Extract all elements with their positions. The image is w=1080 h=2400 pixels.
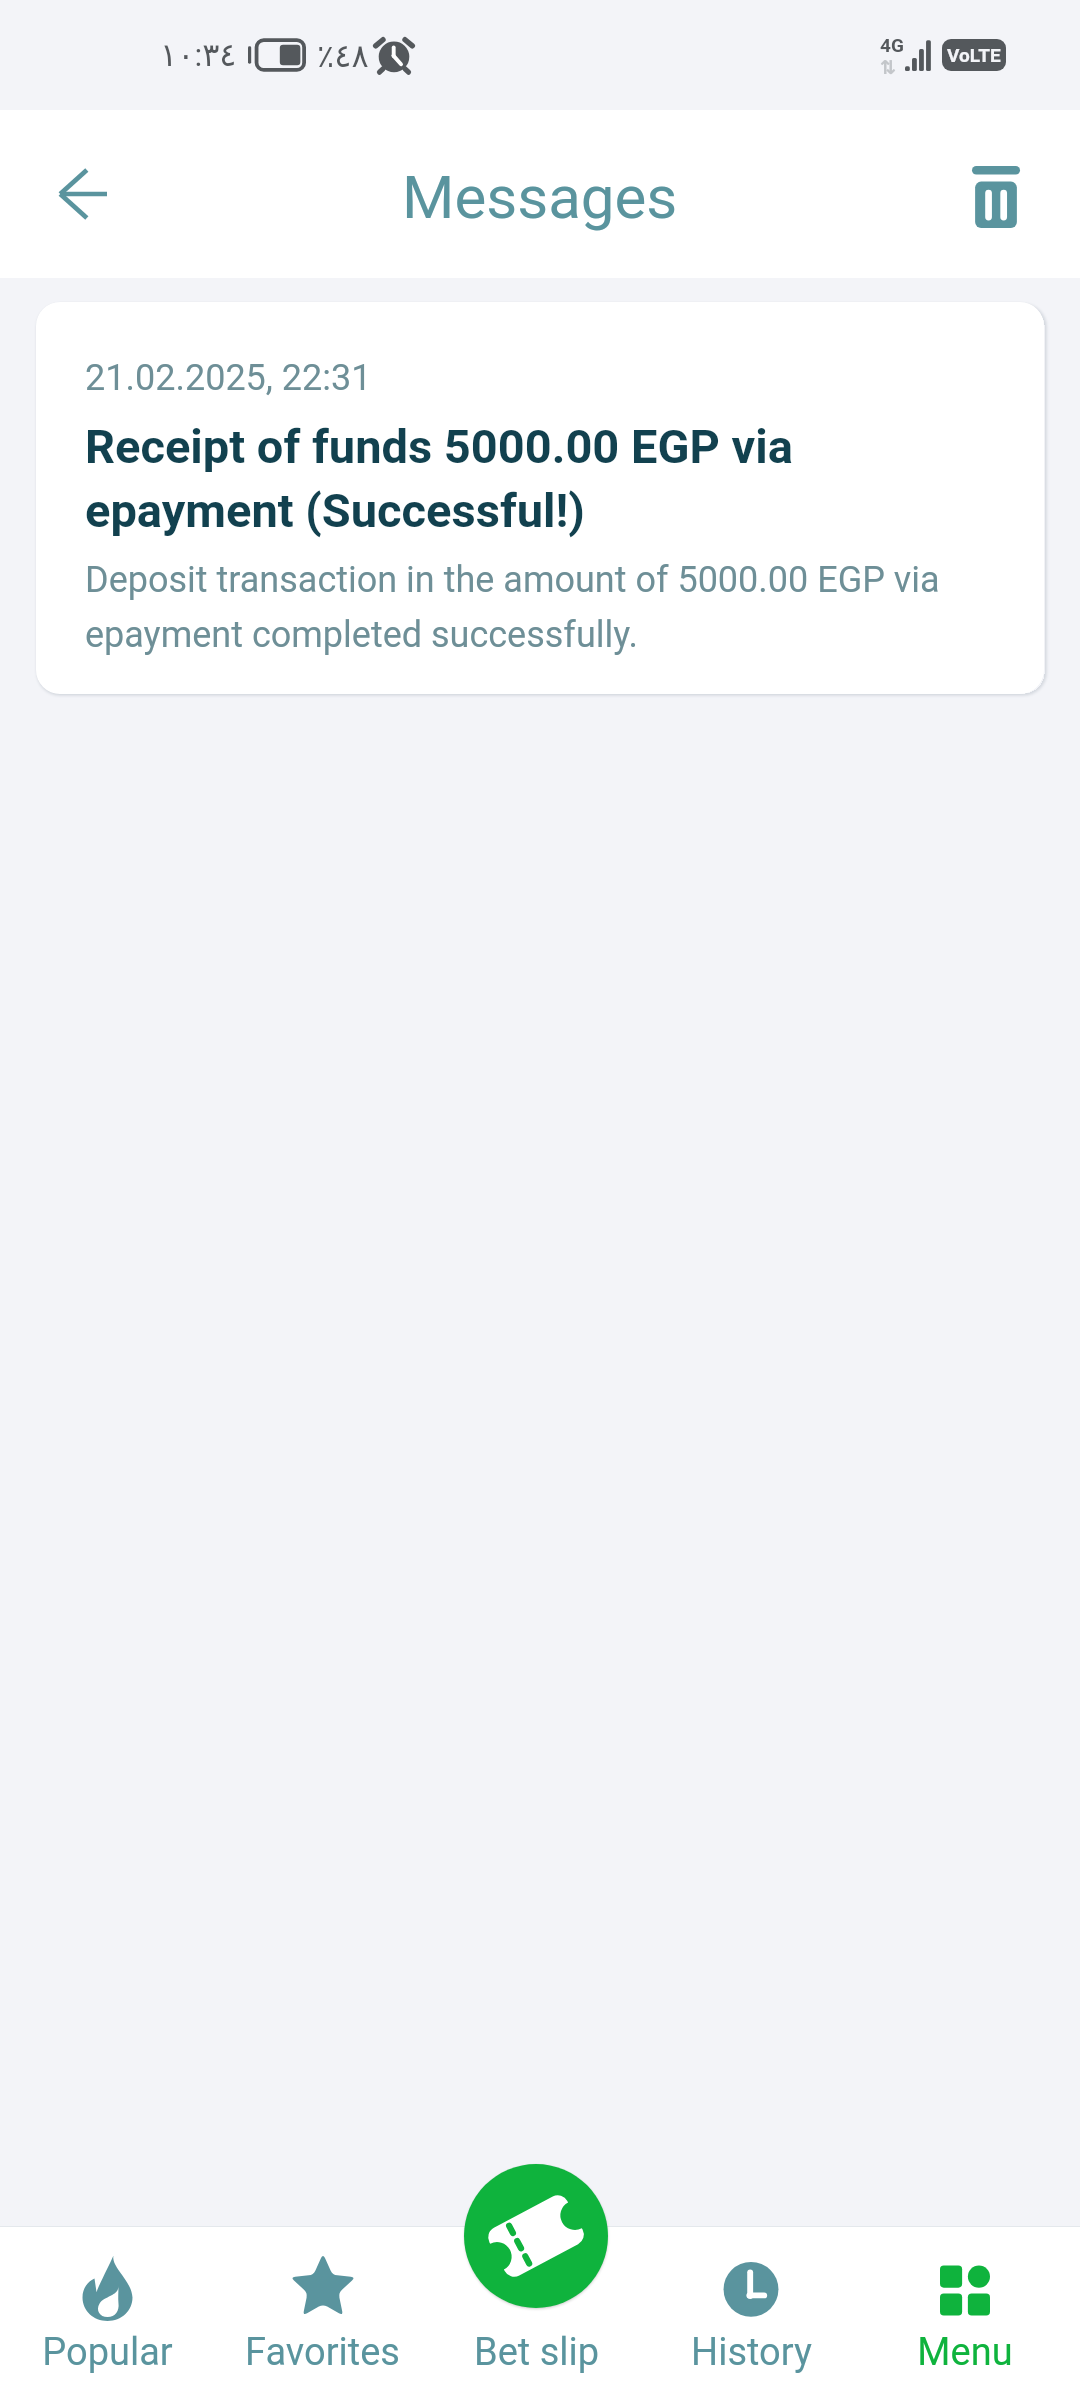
button[interactable]: Menu bbox=[858, 2227, 1072, 2400]
button[interactable]: Bet slip bbox=[464, 2164, 608, 2308]
button[interactable]: History bbox=[644, 2227, 858, 2400]
button[interactable]: Popular bbox=[0, 2227, 215, 2400]
staticText: Messages bbox=[402, 162, 678, 232]
staticText: 21.02.2025, 22:31 bbox=[85, 357, 372, 399]
staticText: Deposit transaction in the amount of 500… bbox=[85, 559, 1004, 656]
staticText: ١٠:٣٤ bbox=[160, 36, 237, 74]
button[interactable]: 21.02.2025, 22:31 bbox=[36, 302, 1044, 694]
staticText: 4G bbox=[880, 34, 904, 56]
staticText: Menu bbox=[917, 2330, 1013, 2375]
button[interactable]: Delete all messages bbox=[941, 139, 1051, 249]
staticText: Receipt of funds 5000.00 EGP via epaymen… bbox=[85, 419, 1004, 538]
staticText: Bet slip bbox=[474, 2330, 600, 2375]
staticText: Favorites bbox=[245, 2330, 400, 2375]
button[interactable]: Bet slip bbox=[430, 2227, 644, 2400]
staticText: ⇅ bbox=[880, 56, 896, 78]
staticText: History bbox=[691, 2330, 812, 2375]
button[interactable]: Back bbox=[28, 139, 138, 249]
staticText: VoLTE bbox=[947, 44, 1001, 66]
button[interactable]: Favorites bbox=[215, 2227, 430, 2400]
staticText: ٪٤٨ bbox=[317, 37, 369, 74]
staticText: Popular bbox=[42, 2330, 173, 2375]
